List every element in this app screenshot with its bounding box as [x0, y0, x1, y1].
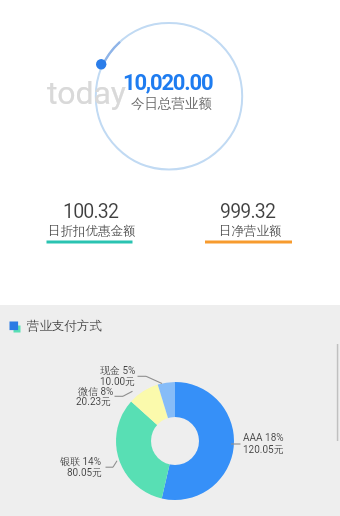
staticText: 80.05元: [67, 466, 103, 479]
staticText: 日折扣优惠金额: [48, 223, 136, 239]
staticText: 20.23元: [76, 395, 112, 408]
staticText: 日净营业额: [219, 223, 282, 239]
staticText: 银联 14%: [60, 455, 102, 468]
staticText: 现金 5%: [100, 364, 136, 377]
staticText: 999.32: [220, 200, 276, 223]
staticText: 营业支付方式: [27, 318, 102, 334]
staticText: 100.32: [63, 200, 119, 223]
staticText: 今日总营业额: [131, 95, 212, 112]
staticText: AAA 18%: [243, 432, 284, 444]
staticText: 10.00元: [100, 375, 136, 388]
staticText: 微信 8%: [78, 385, 114, 398]
staticText: 120.05元: [243, 443, 284, 456]
staticText: today: [47, 74, 126, 112]
staticText: 10,020.00: [123, 70, 213, 96]
